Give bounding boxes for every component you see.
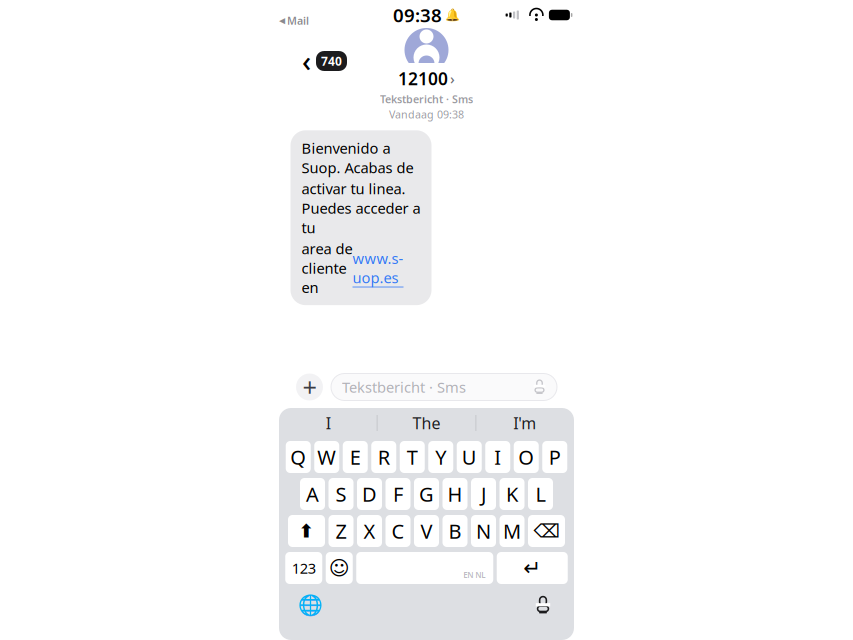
staticText: 740 — [321, 53, 342, 69]
button[interactable]: T — [400, 441, 425, 473]
staticText: H — [447, 481, 462, 507]
staticText: ↵ — [523, 556, 541, 580]
staticText: X — [363, 518, 375, 544]
button[interactable]: Emoji — [326, 552, 353, 584]
button[interactable]: O — [514, 441, 539, 473]
button[interactable]: X — [357, 515, 382, 547]
button[interactable]: M — [499, 515, 524, 547]
button[interactable]: 123 — [285, 552, 322, 584]
staticText: A — [306, 481, 319, 507]
button[interactable]: I — [280, 408, 377, 438]
button[interactable]: G — [414, 478, 439, 510]
staticText: T — [407, 444, 418, 470]
staticText: 12100 — [398, 67, 448, 90]
staticText: ⬆ — [298, 520, 314, 542]
button[interactable]: www.suop.es — [352, 248, 403, 287]
staticText: Bienvenido a Suop. Acabas de — [301, 138, 413, 177]
button[interactable]: D — [357, 478, 382, 510]
staticText: 🔔 — [445, 8, 460, 22]
staticText: I — [326, 412, 331, 434]
staticText: W — [317, 444, 336, 470]
staticText: V — [420, 518, 432, 544]
button[interactable]: Tekstbericht · Sms — [331, 373, 557, 400]
staticText: M — [503, 518, 521, 544]
button[interactable]: P — [542, 441, 567, 473]
button[interactable]: Return — [497, 552, 568, 584]
staticText: Tekstbericht · Sms — [380, 92, 473, 106]
staticText: Mail — [287, 13, 309, 28]
staticText: 123 — [292, 558, 316, 578]
staticText: www.suop.es — [352, 248, 403, 287]
button[interactable]: I — [485, 441, 510, 473]
staticText: Y — [435, 444, 446, 470]
staticText: The — [412, 412, 440, 434]
staticText: 🌐 — [297, 594, 322, 616]
staticText: N — [476, 518, 491, 544]
staticText: EN NL — [463, 570, 485, 580]
button[interactable]: Q — [286, 441, 311, 473]
staticText: C — [391, 518, 404, 544]
staticText: B — [448, 518, 461, 544]
button[interactable]: Z — [328, 515, 353, 547]
staticText: ‹ — [302, 42, 311, 80]
staticText: J — [481, 481, 486, 507]
staticText: Tekstbericht · Sms — [342, 377, 466, 397]
button[interactable]: K — [499, 478, 524, 510]
staticText: F — [393, 481, 403, 507]
button[interactable]: 12100 — [389, 28, 464, 94]
button[interactable]: U — [457, 441, 482, 473]
button[interactable]: Space — [356, 552, 493, 584]
button[interactable]: I'm — [476, 408, 573, 438]
button[interactable]: Shift — [288, 515, 325, 547]
button[interactable]: Next keyboard — [293, 590, 327, 620]
button[interactable]: C — [385, 515, 410, 547]
staticText: I — [494, 444, 501, 470]
staticText: Vandaag 09:38 — [389, 107, 464, 121]
button[interactable]: Delete — [528, 515, 565, 547]
button[interactable]: E — [343, 441, 368, 473]
staticText: L — [535, 481, 545, 507]
button[interactable]: B — [442, 515, 467, 547]
staticText: Z — [335, 518, 346, 544]
staticText: activar tu linea. Puedes acceder a tu — [301, 179, 420, 237]
button[interactable]: H — [442, 478, 467, 510]
staticText: D — [362, 481, 377, 507]
staticText: S — [335, 481, 346, 507]
staticText: E — [350, 444, 361, 470]
staticText: O — [518, 444, 534, 470]
button[interactable]: Back — [291, 47, 358, 75]
staticText: ◀ — [279, 16, 285, 25]
button[interactable]: R — [371, 441, 396, 473]
staticText: + — [302, 370, 316, 404]
button[interactable]: S — [328, 478, 353, 510]
staticText: K — [506, 481, 518, 507]
staticText: ⌫ — [533, 520, 559, 542]
staticText: Q — [290, 444, 306, 470]
button[interactable]: Add attachment — [296, 370, 323, 404]
staticText: I'm — [513, 412, 536, 434]
button[interactable]: F — [385, 478, 410, 510]
staticText: ☺ — [329, 557, 350, 579]
staticText: › — [450, 69, 455, 88]
staticText: area de cliente en — [301, 239, 352, 297]
button[interactable]: Y — [428, 441, 453, 473]
button[interactable]: A — [300, 478, 325, 510]
staticText: P — [549, 444, 561, 470]
button[interactable]: V — [414, 515, 439, 547]
staticText: U — [462, 444, 477, 470]
staticText: G — [419, 481, 434, 507]
button[interactable]: The — [377, 408, 475, 438]
staticText: R — [378, 444, 390, 470]
button[interactable]: N — [471, 515, 496, 547]
button[interactable]: L — [528, 478, 553, 510]
button[interactable]: J — [471, 478, 496, 510]
button[interactable]: Dictate — [526, 590, 560, 620]
staticText: 09:38 — [393, 3, 442, 27]
button[interactable]: W — [314, 441, 339, 473]
